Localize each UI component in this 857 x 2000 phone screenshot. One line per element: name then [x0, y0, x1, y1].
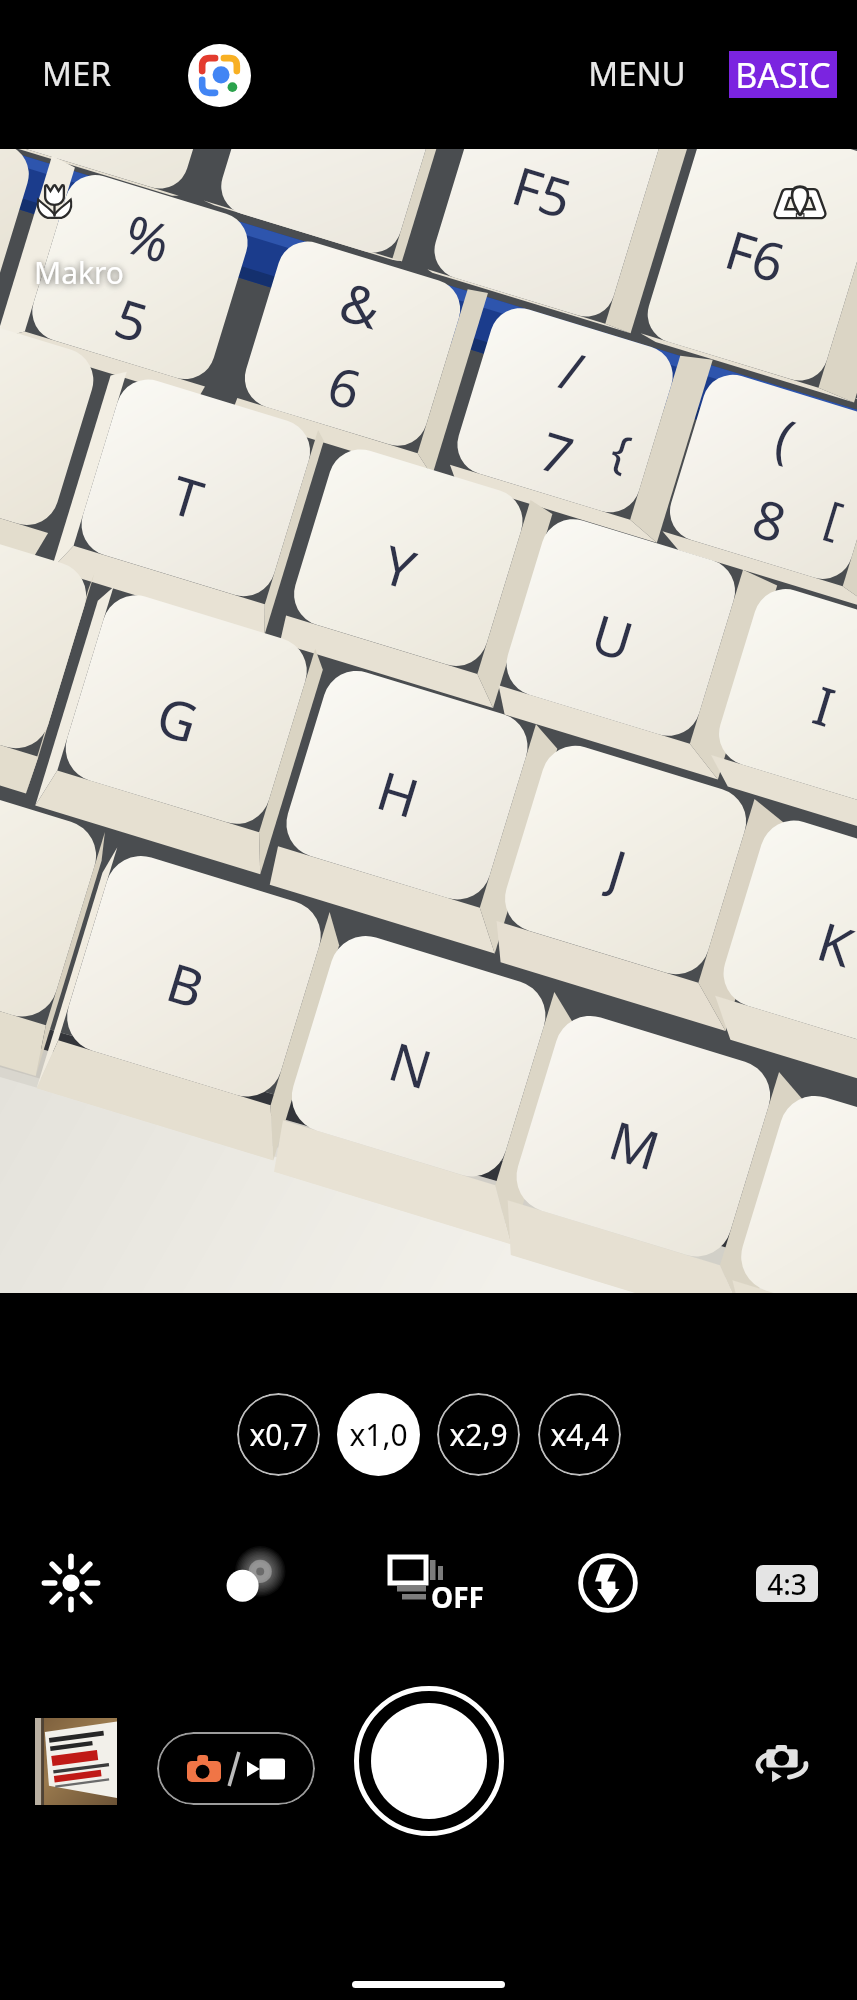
staticText: OFF — [431, 1578, 484, 1616]
button[interactable]: Gallery — [35, 1718, 117, 1805]
staticText: & — [333, 264, 390, 340]
staticText: B — [160, 944, 213, 1020]
staticText: / — [553, 333, 592, 403]
staticText: I — [806, 668, 844, 738]
staticText: 5 — [108, 280, 157, 354]
button[interactable]: x4,4 — [538, 1393, 621, 1476]
button[interactable]: MER — [20, 37, 133, 110]
button[interactable]: x1,0 — [337, 1393, 420, 1476]
staticText: Y — [376, 527, 424, 601]
button[interactable]: Switch camera — [750, 1730, 814, 1794]
staticText: N — [382, 1024, 441, 1101]
staticText: { — [603, 418, 639, 483]
button[interactable]: BASIC — [729, 51, 837, 98]
button[interactable]: Shutter — [354, 1686, 504, 1836]
staticText: % — [117, 196, 180, 274]
staticText: F5 — [505, 149, 581, 230]
staticText: ( — [768, 400, 804, 470]
button[interactable]: x2,9 — [437, 1393, 520, 1476]
button[interactable]: Bokeh — [209, 1541, 289, 1621]
staticText: M — [602, 1102, 669, 1182]
staticText: x0,7 — [249, 1414, 308, 1455]
staticText: BASIC — [735, 52, 831, 98]
button[interactable]: MENU — [566, 37, 708, 110]
staticText: H — [370, 753, 428, 829]
staticText: 4:3 — [767, 1565, 807, 1602]
button[interactable]: x0,7 — [237, 1393, 320, 1476]
staticText: G — [150, 678, 207, 754]
button[interactable]: Brightness — [34, 1546, 108, 1620]
staticText: K — [811, 904, 857, 978]
button[interactable]: Flash off — [571, 1546, 645, 1620]
button[interactable]: Burst off — [386, 1547, 486, 1619]
button[interactable]: Scene detection — [772, 177, 828, 233]
button[interactable]: Aspect ratio 4:3 — [756, 1565, 818, 1602]
staticText: MENU — [588, 51, 686, 96]
staticText: x1,0 — [349, 1414, 408, 1455]
staticText: MER — [42, 51, 111, 96]
staticText: 8 — [746, 480, 795, 554]
staticText: J — [601, 831, 636, 901]
staticText: 7 — [533, 413, 582, 487]
staticText: Makro — [34, 252, 124, 293]
button[interactable]: Macro mode — [20, 171, 130, 276]
staticText: 6 — [321, 347, 370, 421]
button[interactable]: Google Lens — [188, 44, 251, 107]
staticText: U — [585, 596, 642, 672]
button[interactable]: Photo or video mode — [157, 1732, 315, 1805]
staticText: F6 — [718, 212, 794, 294]
staticText: T — [164, 457, 212, 531]
staticText: x2,9 — [449, 1414, 508, 1455]
staticText: [ — [817, 485, 851, 550]
staticText: x4,4 — [550, 1414, 609, 1455]
